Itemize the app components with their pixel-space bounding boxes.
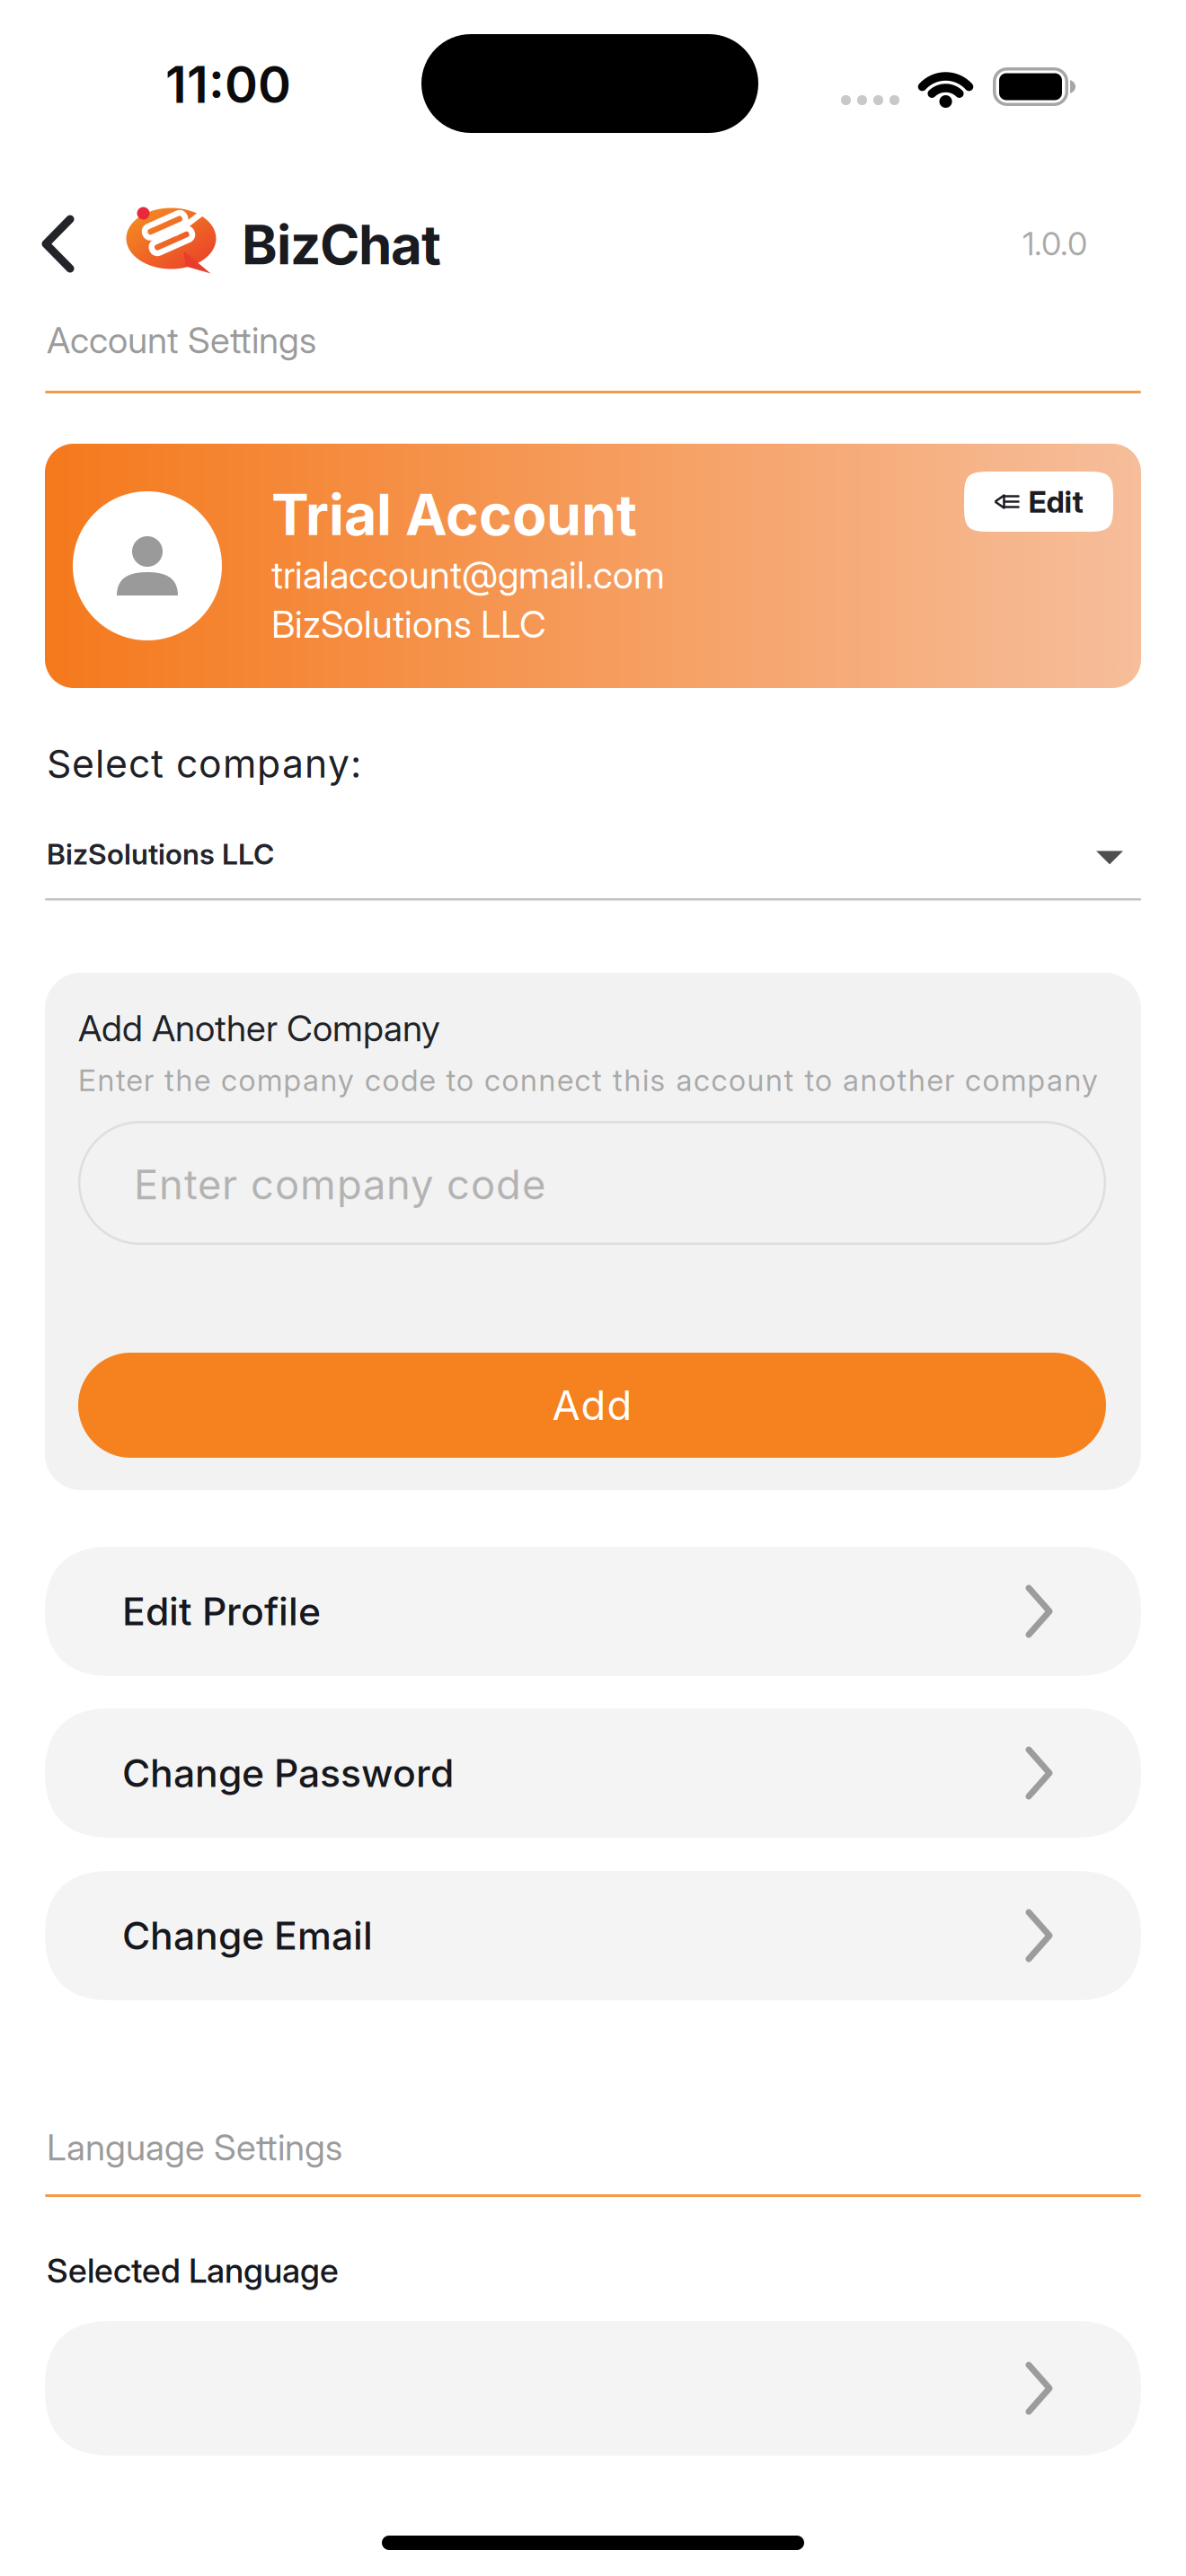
staticText: Add Another Company — [78, 1007, 440, 1049]
staticText: BizSolutions LLC — [271, 602, 546, 646]
button[interactable]: Change Email — [45, 1871, 1141, 2000]
staticText: Enter company code — [134, 1160, 545, 1209]
staticText: Account Settings — [47, 319, 316, 361]
staticText: Edit — [1028, 484, 1083, 519]
button[interactable]: Add — [45, 973, 1141, 1490]
button[interactable]: Edit Profile — [45, 1547, 1141, 1676]
staticText: Enter the company code to connect this a… — [78, 1063, 1098, 1098]
staticText: BizChat — [242, 213, 441, 276]
staticText: Selected Language — [47, 2251, 339, 2290]
button[interactable]: Selected language — [45, 2321, 1141, 2456]
staticText: Change Email — [122, 1913, 373, 1958]
button[interactable]: Change Password — [45, 1708, 1141, 1838]
staticText: Select company: — [47, 741, 361, 786]
staticText: Edit Profile — [122, 1589, 321, 1634]
staticText: Language Settings — [47, 2126, 342, 2168]
staticText: trialaccount@gmail.com — [271, 553, 665, 597]
staticText: Add — [552, 1381, 632, 1429]
staticText: 1.0.0 — [1022, 225, 1087, 263]
staticText: 11:00 — [165, 55, 291, 114]
staticText: Trial Account — [271, 481, 637, 548]
button[interactable]: BizSolutions LLC — [0, 0, 1186, 2576]
staticText: Change Password — [122, 1750, 454, 1796]
button[interactable]: Edit — [45, 444, 1141, 688]
button[interactable]: Back — [0, 0, 1186, 2576]
staticText: BizSolutions LLC — [47, 837, 274, 871]
